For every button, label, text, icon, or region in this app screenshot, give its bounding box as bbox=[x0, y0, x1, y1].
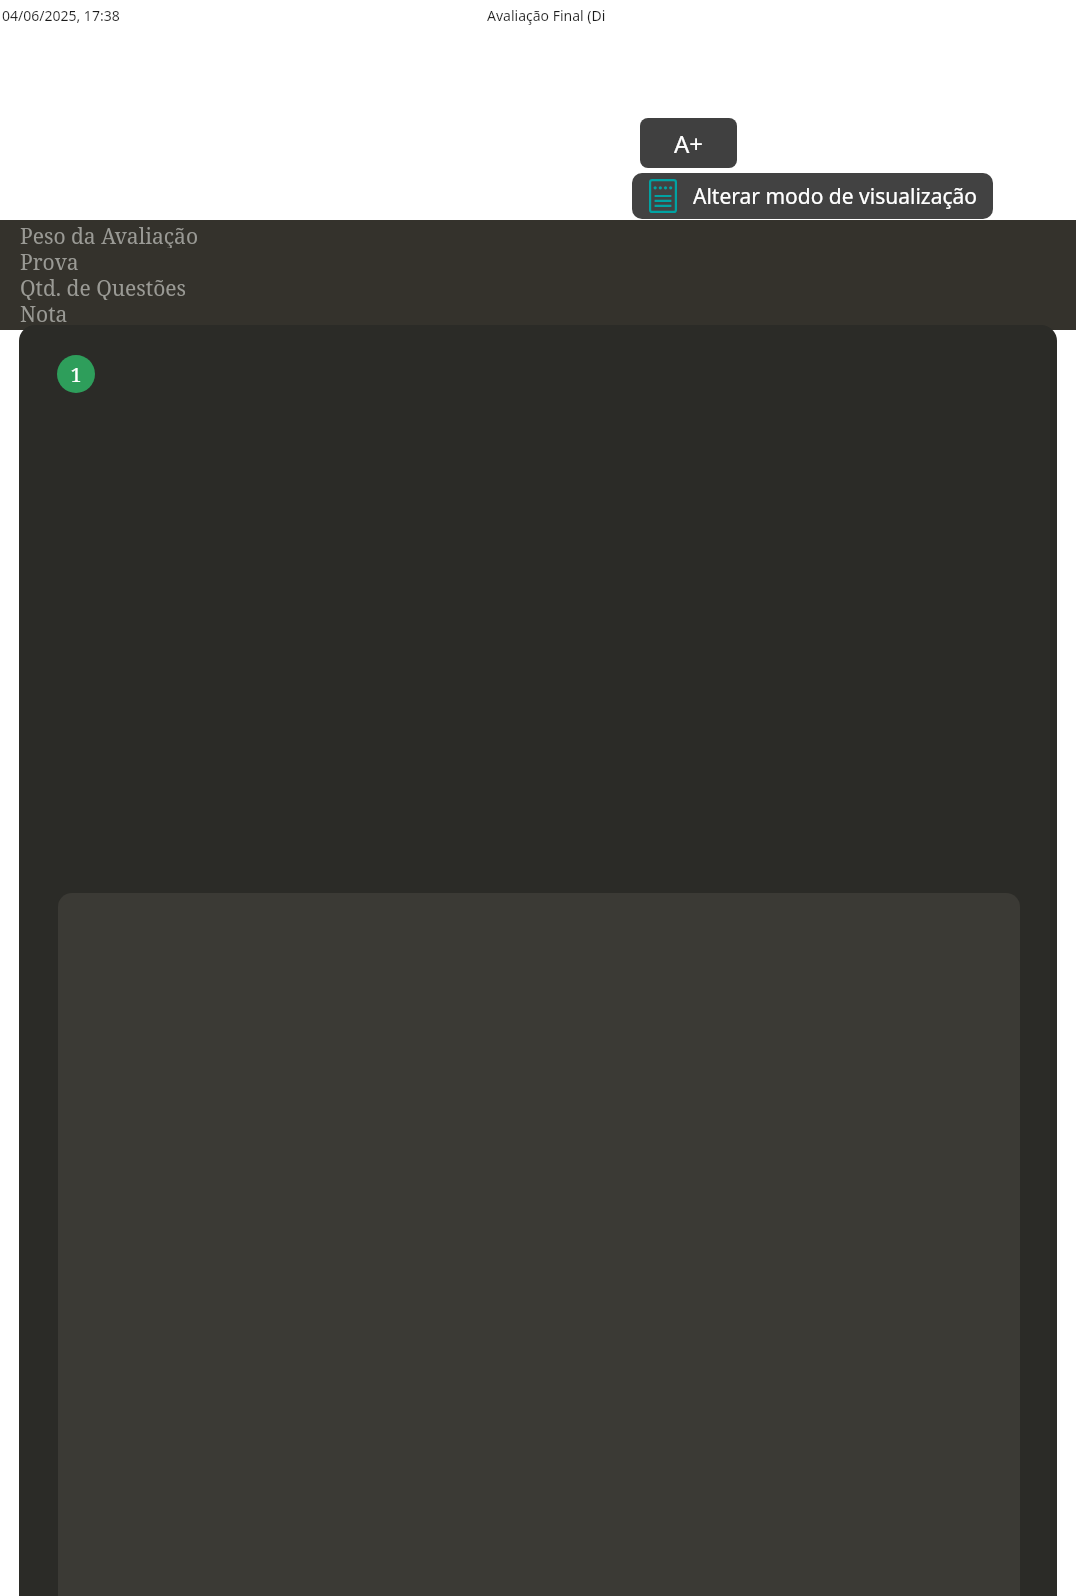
staticText: Avaliação Final (Di bbox=[487, 6, 606, 25]
staticText: Prova bbox=[20, 248, 79, 274]
button[interactable]: A+ bbox=[640, 118, 737, 168]
staticText: Qtd. de Questões bbox=[20, 274, 187, 300]
staticText: Peso da Avaliação bbox=[20, 222, 198, 248]
button[interactable]: Alterar modo de visualização bbox=[632, 173, 993, 219]
staticText: 04/06/2025, 17:38 bbox=[2, 6, 120, 25]
staticText: Nota bbox=[20, 300, 68, 326]
staticText: Alterar modo de visualização bbox=[693, 182, 978, 211]
button[interactable]: 1 bbox=[57, 355, 95, 393]
staticText: A+ bbox=[674, 127, 704, 160]
staticText: 1 bbox=[70, 361, 82, 388]
button[interactable]: 1 bbox=[19, 325, 1057, 1596]
